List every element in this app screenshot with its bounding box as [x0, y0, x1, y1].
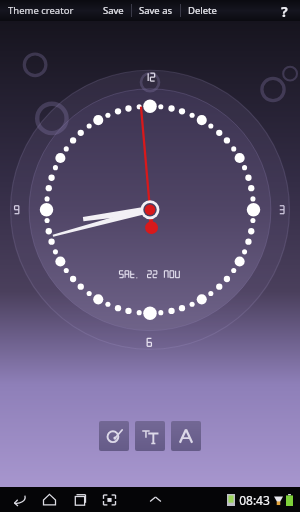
button[interactable]: Save as — [132, 1, 180, 20]
button[interactable]: Help — [275, 0, 294, 21]
staticText: Delete — [188, 4, 217, 17]
button[interactable]: Font — [171, 421, 201, 451]
button[interactable]: Colors — [99, 421, 129, 451]
staticText: 08:43 — [239, 492, 270, 508]
button[interactable]: Expand — [140, 487, 170, 512]
staticText: Theme creator — [8, 4, 74, 17]
staticText: Save — [103, 4, 124, 17]
button[interactable]: Home — [34, 487, 64, 512]
button[interactable]: Text size — [135, 421, 165, 451]
staticText: ? — [281, 2, 288, 19]
button[interactable]: Save — [96, 1, 131, 20]
button[interactable]: Back — [4, 487, 34, 512]
staticText: Save as — [139, 4, 173, 17]
button[interactable]: Delete — [181, 1, 224, 20]
button[interactable]: Recents — [64, 487, 94, 512]
button[interactable]: Screenshot — [94, 487, 124, 512]
